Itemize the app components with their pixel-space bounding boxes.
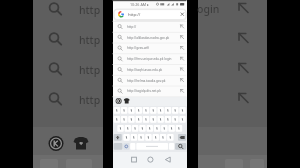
button[interactable]	[113, 54, 187, 65]
button[interactable]	[125, 125, 132, 132]
staticText: http://gvav-wifi	[127, 46, 150, 50]
button[interactable]	[128, 107, 135, 114]
button[interactable]	[143, 116, 150, 123]
button[interactable]	[123, 143, 129, 150]
button[interactable]	[139, 125, 146, 132]
button[interactable]	[175, 143, 186, 150]
button[interactable]	[114, 134, 122, 141]
button[interactable]	[150, 107, 157, 114]
button[interactable]	[114, 143, 123, 150]
button[interactable]	[136, 107, 143, 114]
button[interactable]	[162, 154, 173, 165]
button[interactable]	[160, 134, 167, 141]
button[interactable]	[131, 134, 138, 141]
staticText: http	[79, 93, 101, 107]
button[interactable]	[153, 134, 160, 141]
button[interactable]	[132, 125, 139, 132]
button[interactable]	[138, 134, 145, 141]
button[interactable]	[129, 154, 140, 165]
button[interactable]	[157, 107, 164, 114]
staticText: http://	[127, 25, 137, 29]
button[interactable]	[179, 107, 186, 114]
button[interactable]	[121, 107, 128, 114]
button[interactable]	[128, 116, 135, 123]
button[interactable]	[150, 116, 157, 123]
button[interactable]	[136, 143, 168, 150]
button[interactable]	[130, 143, 135, 150]
button[interactable]	[179, 116, 186, 123]
button[interactable]	[143, 107, 150, 114]
button[interactable]	[113, 75, 187, 86]
button[interactable]	[165, 116, 172, 123]
staticText: http://helma.taadia.gov.pk	[127, 79, 166, 83]
button[interactable]	[113, 32, 187, 43]
staticText: http://fms.unique.edu.pk login	[127, 57, 172, 61]
button[interactable]	[145, 154, 156, 165]
button[interactable]	[117, 125, 124, 132]
button[interactable]	[114, 9, 186, 20]
button[interactable]	[123, 97, 131, 105]
staticText: http://taqhi.asoo.edu.pk	[127, 68, 163, 72]
button[interactable]	[113, 65, 187, 76]
button[interactable]	[113, 22, 187, 33]
button[interactable]	[113, 152, 187, 168]
button[interactable]	[123, 134, 130, 141]
button[interactable]	[114, 116, 121, 123]
button[interactable]	[157, 116, 164, 123]
button[interactable]	[178, 134, 186, 141]
button[interactable]	[115, 97, 123, 105]
button[interactable]	[121, 116, 128, 123]
staticText: http	[79, 33, 101, 47]
button[interactable]	[154, 125, 161, 132]
button[interactable]	[172, 107, 179, 114]
button[interactable]	[113, 86, 187, 97]
button[interactable]	[147, 125, 154, 132]
button[interactable]	[161, 125, 168, 132]
button[interactable]	[165, 107, 172, 114]
button[interactable]	[176, 125, 183, 132]
button[interactable]	[167, 134, 174, 141]
button[interactable]	[113, 43, 187, 54]
staticText: ogin	[197, 2, 220, 16]
staticText: http	[79, 63, 101, 77]
button[interactable]	[136, 116, 143, 123]
button[interactable]	[114, 107, 121, 114]
staticText: http	[79, 3, 101, 17]
staticText: http://tagidp.dts.net.pk	[127, 89, 161, 93]
button[interactable]	[172, 116, 179, 123]
staticText: http://	[128, 12, 141, 18]
staticText: http://alklasdas.nadra.gov.pk	[127, 36, 170, 40]
button[interactable]	[178, 9, 187, 19]
staticText: 10:26 AM ▸	[130, 2, 149, 7]
button[interactable]	[145, 134, 152, 141]
button[interactable]	[168, 125, 175, 132]
